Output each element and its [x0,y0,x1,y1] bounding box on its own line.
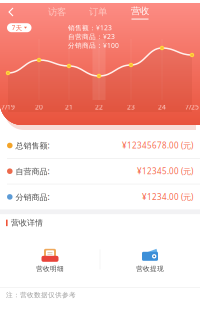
staticText: 自营商品：¥23 [68,32,115,41]
staticText: 24 [158,103,166,111]
staticText: 营收 [131,5,149,17]
staticText: 营收详情 [11,218,43,228]
button[interactable]: 营收明细 [0,231,100,287]
staticText: 自营商品: [16,166,50,176]
staticText: 分销商品：¥100 [68,41,119,50]
button[interactable]: 访客 [40,3,74,21]
button[interactable]: 返回 [0,3,22,21]
staticText: 访客 [48,6,66,18]
staticText: 销售额：¥123 [68,23,112,32]
button[interactable]: 订单 [81,3,115,21]
staticText: 注：营收数据仅供参考 [6,291,76,299]
staticText: 总销售额: [16,140,50,151]
button[interactable]: 7天 [7,23,31,32]
staticText: 7天 [11,23,22,32]
staticText: 22 [95,103,103,111]
staticText: 分销商品: [16,192,50,202]
staticText: 7/25 [185,103,199,111]
staticText: 营收明细 [36,265,64,273]
button[interactable]: 营收提现 [100,231,200,287]
button[interactable]: 营收 [123,3,157,21]
staticText: 7/19 [1,103,15,111]
staticText: 20 [35,103,43,111]
staticText: ¥1234.00 (元) [142,192,193,202]
staticText: 营收提现 [136,265,164,273]
staticText: 订单 [89,6,107,18]
staticText: ¥12345.00 (元) [137,166,193,176]
staticText: 21 [65,103,73,111]
staticText: 23 [127,103,135,111]
staticText: ¥12345678.00 (元) [122,140,193,151]
